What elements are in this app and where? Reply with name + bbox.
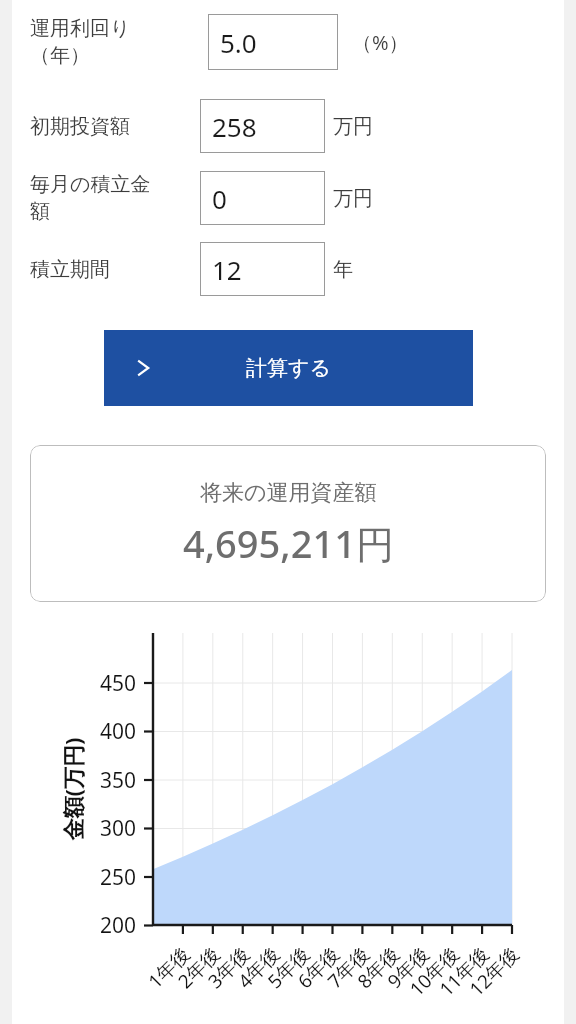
staticText: 年 [333,257,353,282]
staticText: 万円 [333,186,373,211]
button[interactable]: 5.0 [208,14,338,70]
staticText: 0 [212,181,227,216]
staticText: 積立期間 [30,257,110,282]
button[interactable]: 0 [200,171,325,225]
button[interactable]: 12 [200,242,325,296]
button[interactable]: 258 [200,99,325,153]
staticText: 万円 [333,114,373,139]
staticText: （%） [352,29,409,56]
button[interactable]: 将来の運用資産額 [30,445,546,602]
staticText: 5.0 [220,25,257,60]
staticText: 4,695,211円 [183,517,394,569]
staticText: 12 [212,252,242,287]
staticText: 計算する [246,355,331,381]
staticText: 毎月の積立金額 [30,172,170,224]
staticText: 258 [212,109,257,144]
staticText: 将来の運用資産額 [200,479,377,507]
button[interactable]: 計算する [104,330,473,406]
staticText: 初期投資額 [30,114,130,139]
staticText: 運用利回り（年） [30,16,178,68]
